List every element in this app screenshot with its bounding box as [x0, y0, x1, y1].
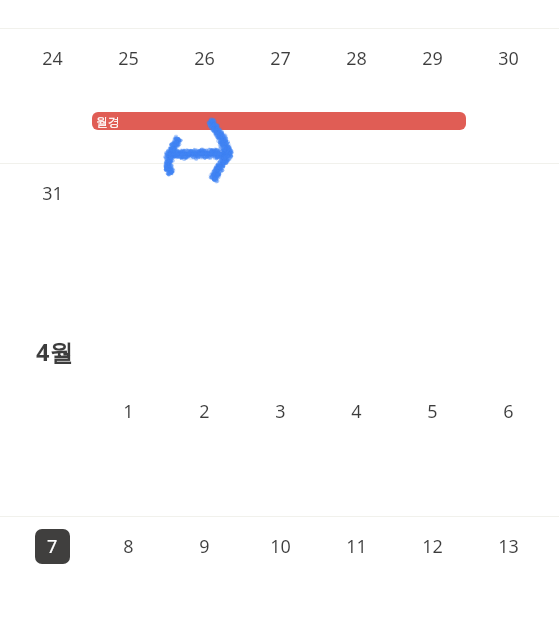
button[interactable]: 10 — [256, 529, 304, 563]
button[interactable]: 1 — [104, 394, 152, 428]
button[interactable]: 월경 — [92, 112, 466, 130]
staticText: 31 — [42, 181, 63, 206]
button[interactable]: 7 — [35, 529, 70, 564]
button[interactable]: 29 — [408, 41, 456, 75]
button[interactable]: 11 — [332, 529, 380, 563]
button[interactable]: 28 — [332, 41, 380, 75]
button[interactable]: 31 — [28, 176, 76, 210]
staticText: 5 — [427, 399, 438, 424]
staticText: 27 — [270, 46, 291, 71]
staticText: 3 — [275, 399, 286, 424]
button[interactable]: 2 — [180, 394, 228, 428]
staticText: 29 — [422, 46, 443, 71]
staticText: 10 — [270, 534, 291, 559]
button[interactable]: 4 — [332, 394, 380, 428]
staticText: 6 — [503, 399, 514, 424]
staticText: 11 — [346, 534, 367, 559]
other: Drag handle annotation — [158, 110, 240, 186]
staticText: 24 — [42, 46, 63, 71]
button[interactable]: 3 — [256, 394, 304, 428]
staticText: 26 — [194, 46, 215, 71]
staticText: 7 — [47, 534, 58, 559]
staticText: 2 — [199, 399, 210, 424]
staticText: 25 — [118, 46, 139, 71]
staticText: 13 — [498, 534, 519, 559]
staticText: 4월 — [36, 336, 73, 368]
button[interactable]: 26 — [180, 41, 228, 75]
button[interactable]: 5 — [408, 394, 456, 428]
staticText: 월경 — [96, 114, 120, 129]
button[interactable]: 13 — [484, 529, 532, 563]
button[interactable]: 12 — [408, 529, 456, 563]
staticText: 4 — [351, 399, 362, 424]
button[interactable]: 25 — [104, 41, 152, 75]
staticText: 1 — [123, 399, 134, 424]
staticText: 28 — [346, 46, 367, 71]
button[interactable]: 30 — [484, 41, 532, 75]
button[interactable]: 6 — [484, 394, 532, 428]
staticText: 8 — [123, 534, 134, 559]
staticText: 30 — [498, 46, 519, 71]
button[interactable]: 27 — [256, 41, 304, 75]
staticText: 12 — [422, 534, 443, 559]
button[interactable]: 4월 — [36, 336, 73, 368]
button[interactable]: 9 — [180, 529, 228, 563]
button[interactable]: 24 — [28, 41, 76, 75]
button[interactable]: 8 — [104, 529, 152, 563]
staticText: 9 — [199, 534, 210, 559]
